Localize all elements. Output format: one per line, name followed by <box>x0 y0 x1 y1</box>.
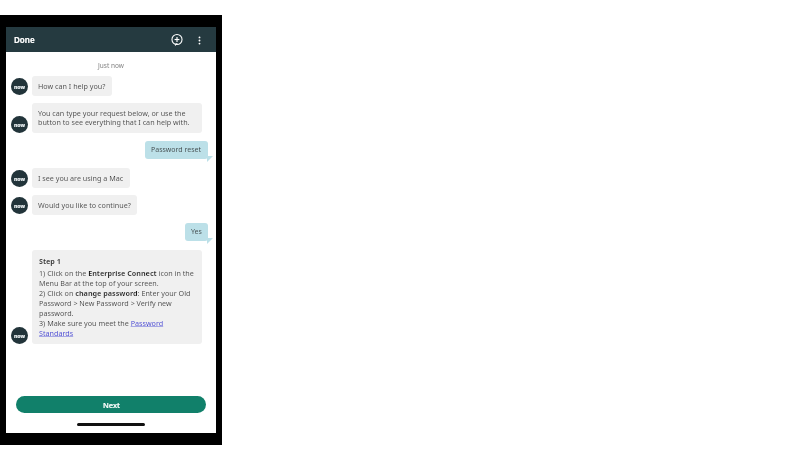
button[interactable]: New conversation <box>168 31 186 49</box>
button[interactable]: You can type your request below, or use … <box>32 103 202 133</box>
staticText: now <box>14 332 25 339</box>
button[interactable]: Would you like to continue? <box>32 195 137 215</box>
staticText: Done <box>14 34 35 45</box>
staticText: Step 1 <box>39 256 61 266</box>
button[interactable]: Password reset <box>145 141 208 159</box>
button[interactable]: More options <box>190 31 208 49</box>
button[interactable]: Step 1 <box>32 250 202 344</box>
button[interactable]: Yes <box>185 223 208 241</box>
staticText: Next <box>103 400 120 410</box>
button[interactable]: How can I help you? <box>32 76 112 96</box>
staticText: You can type your request below, or use … <box>38 108 196 128</box>
staticText: now <box>14 202 25 209</box>
staticText: Yes <box>191 227 202 237</box>
staticText: Just now <box>98 61 124 70</box>
button[interactable]: Next <box>16 396 206 413</box>
staticText: now <box>14 121 25 128</box>
staticText: Password reset <box>151 145 202 155</box>
staticText: I see you are using a Mac <box>38 173 124 183</box>
button[interactable]: I see you are using a Mac <box>32 168 130 188</box>
staticText: How can I help you? <box>38 81 106 91</box>
staticText: now <box>14 175 25 182</box>
staticText: now <box>14 83 25 90</box>
button[interactable]: Done <box>14 34 35 45</box>
staticText: Would you like to continue? <box>38 200 131 210</box>
staticText: 1) Click on the Enterprise Connect icon … <box>39 268 195 338</box>
